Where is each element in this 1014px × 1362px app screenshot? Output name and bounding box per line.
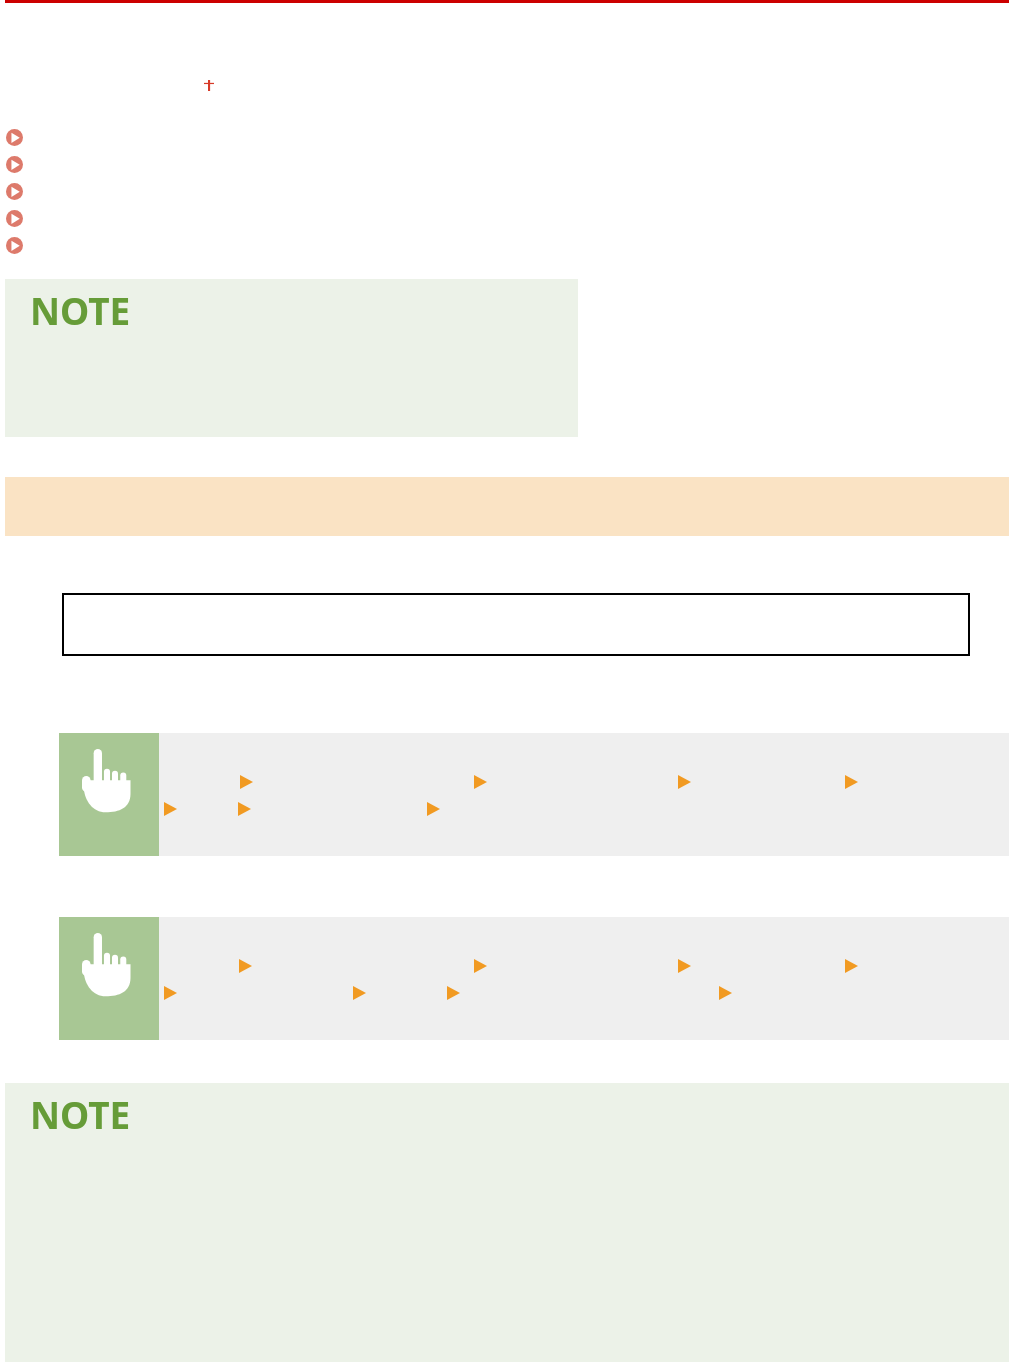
button[interactable]: Related link 2	[6, 156, 23, 173]
button[interactable]: Operation path 1	[59, 733, 1009, 856]
button[interactable]: Related link 4	[6, 210, 23, 227]
button[interactable]: Related link 5	[6, 237, 23, 254]
staticText: NOTE	[30, 285, 131, 335]
button[interactable]: Related link 1	[6, 129, 23, 146]
staticText: NOTE	[30, 1089, 131, 1139]
button[interactable]: Operation path 2	[59, 917, 1009, 1040]
button[interactable]: Related link 3	[6, 183, 23, 200]
